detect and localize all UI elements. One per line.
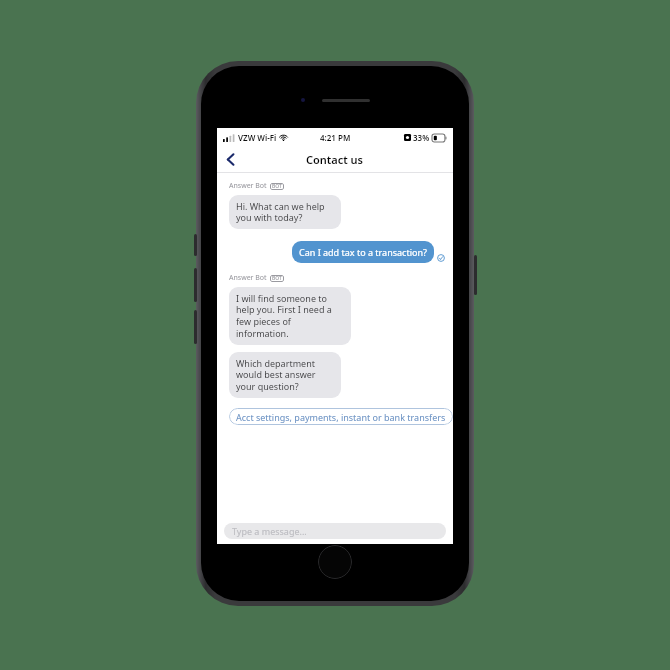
staticText: Answer Bot <box>229 181 267 191</box>
staticText: VZW Wi-Fi <box>238 132 277 143</box>
button[interactable]: Home <box>318 545 352 579</box>
staticText: Answer Bot <box>229 273 267 283</box>
staticText: 4:21 PM <box>320 132 351 143</box>
staticText: Hi. What can we help you with today? <box>236 200 334 224</box>
button[interactable]: Acct settings, payments, instant or bank… <box>229 408 453 425</box>
button[interactable]: Back <box>217 146 243 172</box>
button[interactable]: Hi. What can we help you with today? <box>229 195 341 229</box>
staticText: Can I add tax to a transaction? <box>299 246 427 258</box>
other: Delivered <box>437 254 445 262</box>
button[interactable]: Type a message... <box>224 523 446 539</box>
staticText: BOT <box>272 183 282 190</box>
staticText: Contact us <box>306 152 364 167</box>
staticText: Which department would best answer your … <box>236 357 334 393</box>
staticText: 33% <box>413 132 430 143</box>
staticText: BOT <box>272 275 282 282</box>
button[interactable]: I will find someone to help you. First I… <box>229 287 351 345</box>
button[interactable]: Which department would best answer your … <box>229 352 341 398</box>
staticText: I will find someone to help you. First I… <box>236 292 344 340</box>
staticText: Type a message... <box>232 525 307 537</box>
button[interactable]: Can I add tax to a transaction? <box>292 241 434 263</box>
staticText: Acct settings, payments, instant or bank… <box>236 411 446 423</box>
